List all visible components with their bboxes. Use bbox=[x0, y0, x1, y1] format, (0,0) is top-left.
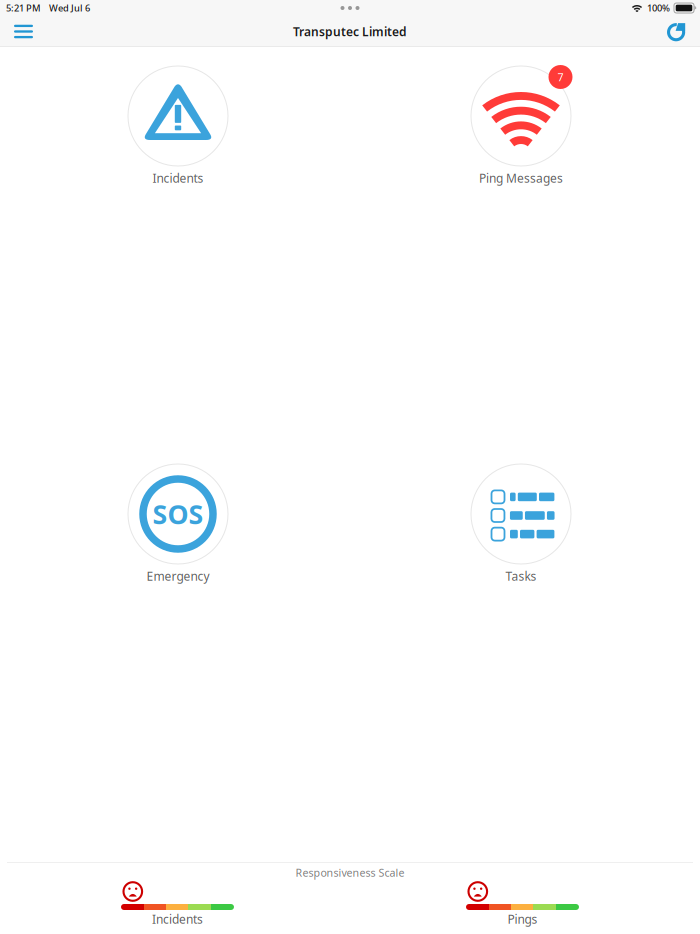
button[interactable]: Tasks bbox=[431, 464, 611, 582]
staticText: Ping Messages bbox=[479, 170, 563, 186]
button[interactable]: Menu bbox=[0, 16, 47, 47]
staticText: 7 bbox=[557, 70, 563, 84]
button[interactable]: Refresh bbox=[653, 16, 700, 47]
staticText: Transputec Limited bbox=[293, 23, 407, 39]
button[interactable]: Incidents bbox=[88, 66, 268, 184]
staticText: Tasks bbox=[505, 568, 536, 584]
button[interactable]: SOS bbox=[88, 464, 268, 582]
staticText: 100% bbox=[647, 2, 670, 14]
staticText: 5:21 PM bbox=[6, 2, 41, 14]
staticText: Pings bbox=[507, 911, 537, 927]
staticText: Incidents bbox=[152, 170, 203, 186]
staticText: Incidents bbox=[152, 911, 203, 927]
button[interactable]: 7 bbox=[431, 66, 611, 184]
staticText: Wed Jul 6 bbox=[49, 2, 90, 14]
staticText: Responsiveness Scale bbox=[295, 865, 404, 880]
staticText: SOS bbox=[152, 496, 203, 532]
staticText: Emergency bbox=[146, 568, 209, 584]
